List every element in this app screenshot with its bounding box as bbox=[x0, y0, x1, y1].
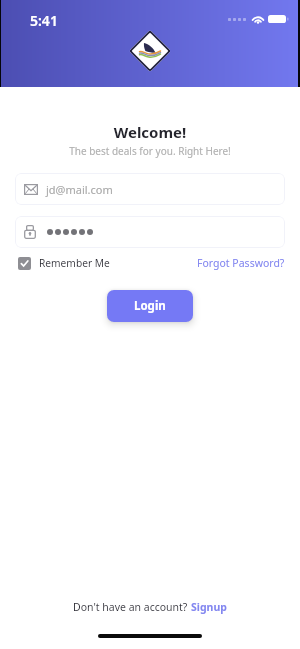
button[interactable]: Forgot Password? bbox=[197, 256, 285, 270]
button[interactable] bbox=[15, 216, 285, 248]
staticText: 5:41 bbox=[30, 11, 58, 30]
staticText: Remember Me bbox=[39, 256, 110, 270]
button[interactable]: Remember Me bbox=[18, 256, 110, 270]
staticText: jd@mail.com bbox=[46, 182, 113, 197]
button[interactable]: Login bbox=[107, 290, 193, 322]
staticText: Don't have an account? bbox=[73, 600, 191, 614]
staticText: Welcome! bbox=[0, 122, 300, 142]
staticText: Login bbox=[134, 298, 166, 314]
button[interactable]: Signup bbox=[191, 600, 227, 614]
button[interactable]: jd@mail.com bbox=[15, 173, 285, 205]
staticText: The best deals for you. Right Here! bbox=[0, 144, 300, 158]
